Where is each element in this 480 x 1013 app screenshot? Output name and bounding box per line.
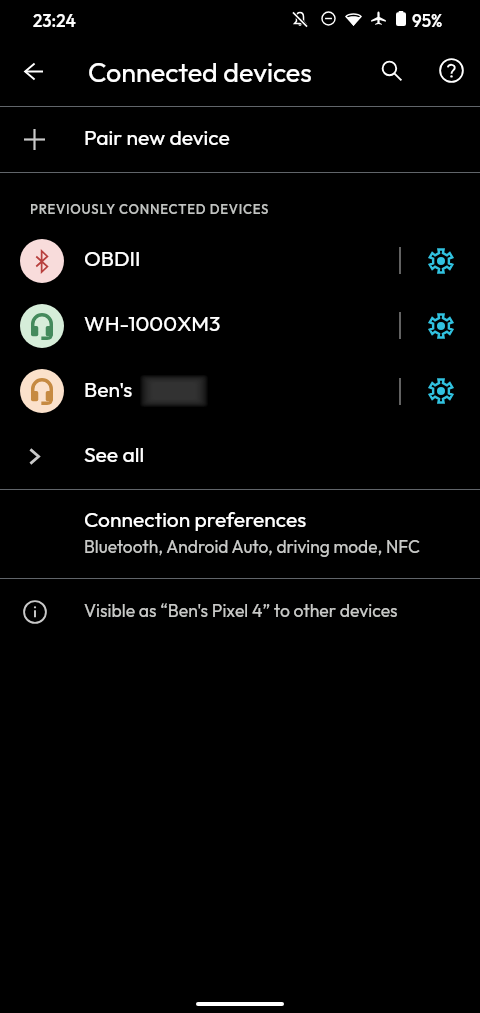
button[interactable]: Device settings	[401, 358, 480, 424]
staticText: 23:24	[33, 10, 76, 32]
button[interactable]: Device settings	[401, 293, 480, 358]
staticText: Connected devices	[88, 55, 312, 89]
button[interactable]: Help	[427, 46, 475, 94]
staticText: Ben's	[84, 376, 133, 403]
staticText: Connection preferences	[84, 506, 307, 532]
staticText: See all	[84, 441, 145, 468]
staticText: Bluetooth, Android Auto, driving mode, N…	[84, 536, 420, 558]
button[interactable]: Device settings	[401, 228, 480, 293]
button[interactable]: See all	[0, 424, 480, 489]
button[interactable]: Connection preferences	[0, 490, 480, 578]
button[interactable]: Visible as “Ben's Pixel 4” to other devi…	[0, 579, 480, 644]
button[interactable]: Navigate up	[10, 46, 58, 94]
staticText: 95%	[412, 10, 443, 32]
button[interactable]: Search	[367, 46, 415, 94]
button[interactable]: Ben's	[0, 358, 399, 424]
staticText: WH-1000XM3	[84, 310, 221, 337]
staticText: Visible as “Ben's Pixel 4” to other devi…	[84, 599, 398, 621]
staticText: Pair new device	[84, 124, 230, 151]
staticText: OBDII	[84, 245, 141, 272]
staticText: PREVIOUSLY CONNECTED DEVICES	[30, 201, 270, 218]
button[interactable]: OBDII	[0, 228, 399, 293]
button[interactable]: Pair new device	[0, 107, 480, 172]
button[interactable]: WH-1000XM3	[0, 293, 399, 358]
